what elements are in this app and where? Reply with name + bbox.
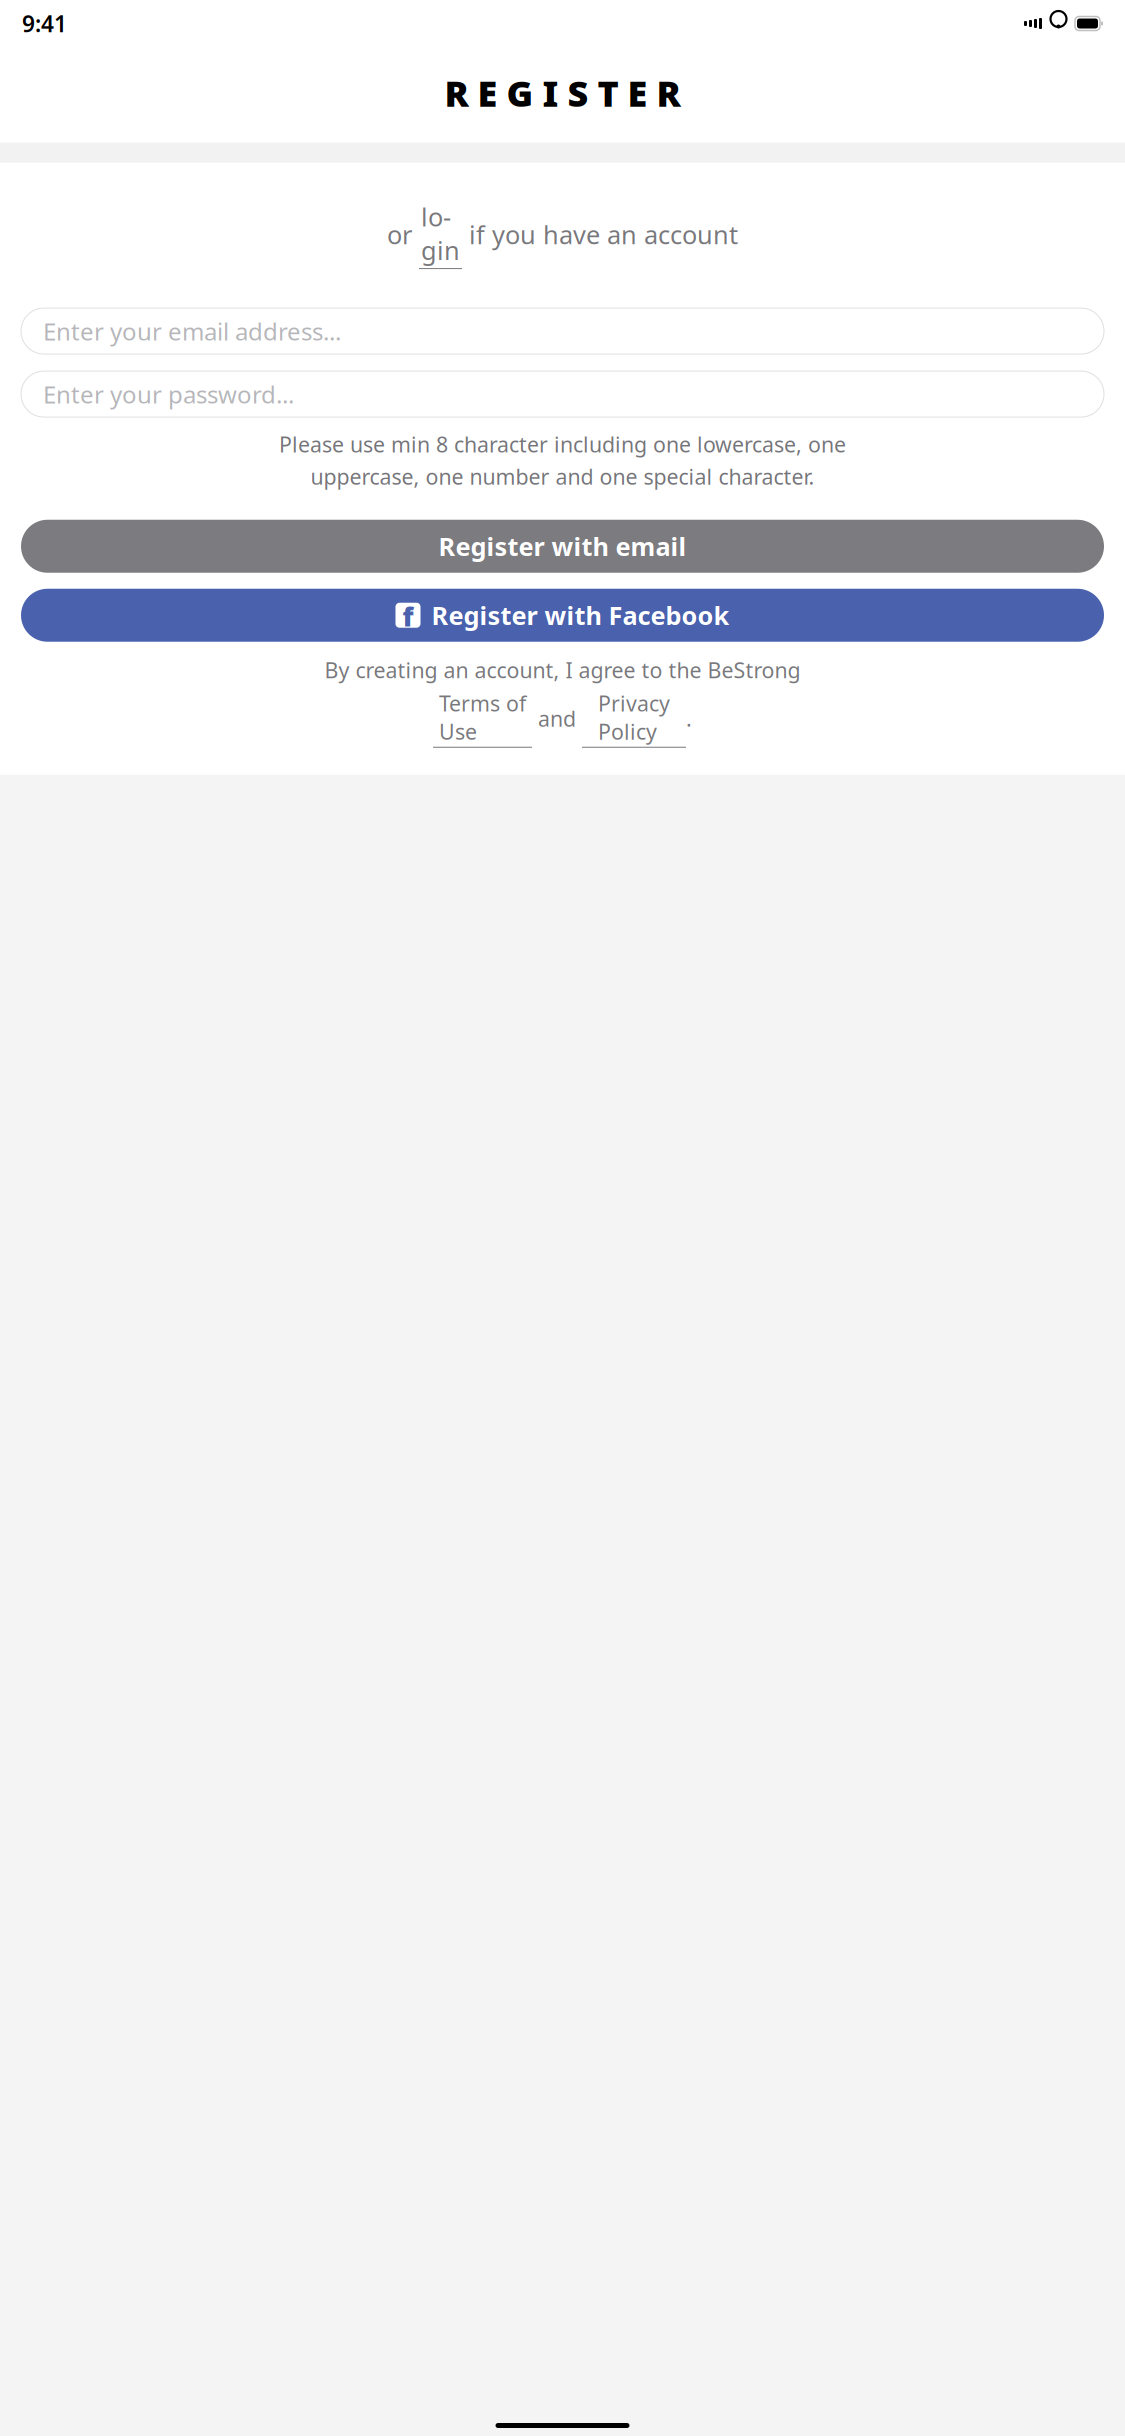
staticText: Please use min 8 character including one… [279, 430, 846, 458]
staticText: . [686, 704, 692, 732]
staticText: f [402, 598, 413, 634]
button[interactable]: Privacy Policy [582, 689, 686, 748]
staticText: login [421, 200, 460, 267]
staticText: if you have an account [462, 218, 738, 251]
staticText: Terms of Use [439, 689, 526, 746]
button[interactable]: Enter your password... [21, 371, 1104, 417]
staticText: 9:41 [22, 8, 67, 38]
button[interactable]: f [21, 589, 1104, 642]
staticText: Register with Facebook [431, 598, 729, 632]
staticText: Enter your password... [43, 378, 294, 410]
staticText: R E G I S T E R [444, 69, 680, 117]
staticText: Enter your email address... [43, 315, 341, 347]
staticText: Register with email [438, 529, 686, 563]
staticText: Privacy Policy [598, 689, 670, 746]
staticText: By creating an account, I agree to the B… [324, 656, 800, 684]
button[interactable]: login [419, 200, 462, 269]
staticText: and [532, 704, 582, 732]
staticText: or [387, 218, 419, 251]
button[interactable]: Terms of Use [433, 689, 532, 748]
button[interactable]: Register with email [21, 520, 1104, 573]
button[interactable]: Enter your email address... [21, 308, 1104, 354]
staticText: uppercase, one number and one special ch… [310, 462, 814, 491]
